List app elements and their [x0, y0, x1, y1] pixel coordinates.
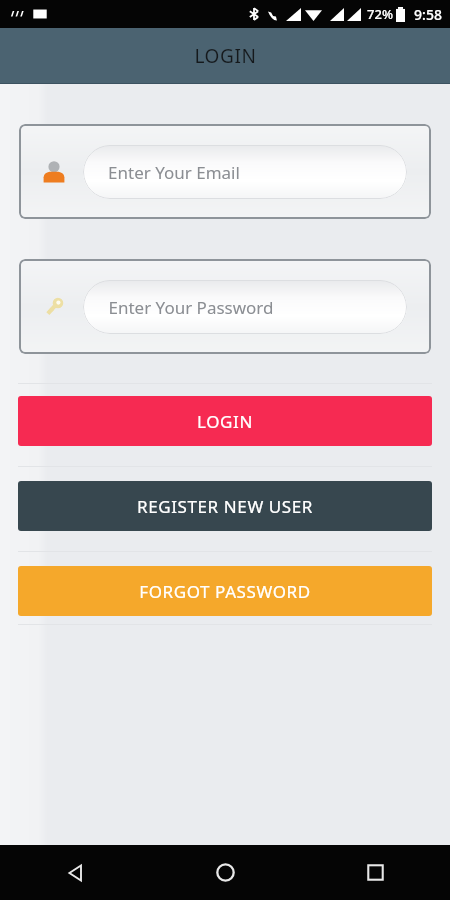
button[interactable]: FORGOT PASSWORD: [18, 566, 432, 616]
staticText: 9:58: [414, 5, 442, 24]
button[interactable]: Recent apps: [300, 845, 450, 900]
staticText: FORGOT PASSWORD: [139, 580, 311, 603]
staticText: Enter Your Password: [108, 296, 274, 319]
button[interactable]: Enter Your Email: [19, 124, 431, 219]
staticText: 72%: [367, 5, 393, 23]
staticText: REGISTER NEW USER: [137, 495, 313, 518]
staticText: LOGIN: [197, 410, 253, 433]
button[interactable]: LOGIN: [18, 396, 432, 446]
button[interactable]: REGISTER NEW USER: [18, 481, 432, 531]
staticText: LOGIN: [194, 43, 257, 69]
staticText: Enter Your Email: [108, 161, 240, 184]
button[interactable]: Back: [0, 845, 150, 900]
button[interactable]: Home: [150, 845, 300, 900]
button[interactable]: Enter Your Password: [19, 259, 431, 354]
